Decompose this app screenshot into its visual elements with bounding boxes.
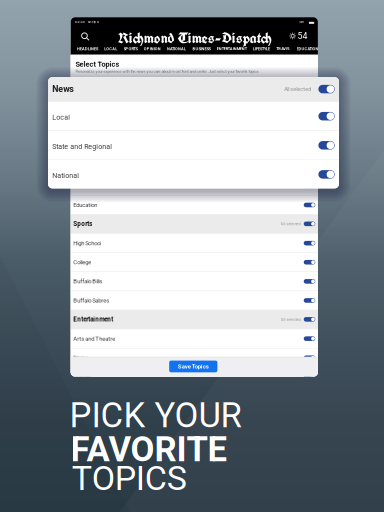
staticText: 10:41 AM Tue Sep 14	[74, 21, 98, 24]
staticText: Dining	[73, 354, 88, 361]
button[interactable]: Dining	[71, 348, 318, 367]
button[interactable]: Arts and Theatre	[71, 329, 318, 348]
staticText: Entertainment	[73, 316, 113, 323]
button[interactable]: Politics	[71, 157, 318, 176]
button[interactable]: High School	[71, 233, 318, 252]
button[interactable]: News	[48, 77, 339, 101]
button[interactable]: National	[48, 160, 339, 189]
staticText: Buffalo Sabres	[73, 297, 109, 304]
button[interactable]: State and Regional	[48, 131, 339, 160]
button[interactable]: Save Topics	[169, 361, 217, 372]
staticText: Local	[52, 113, 70, 122]
staticText: 100%	[299, 20, 304, 23]
staticText: National	[52, 171, 79, 180]
button[interactable]: Nation & World	[71, 176, 318, 195]
staticText: FAVORITE	[71, 429, 228, 470]
button[interactable]: National	[71, 138, 318, 157]
staticText: All selected	[280, 317, 300, 322]
staticText: High School	[73, 240, 101, 247]
staticText: Save Topics	[178, 363, 209, 370]
button[interactable]: Search	[81, 32, 89, 41]
staticText: ENTERTAINMENT	[217, 47, 247, 51]
button[interactable]: Buffalo Bills	[71, 272, 318, 291]
staticText: 54	[298, 31, 308, 41]
staticText: TRAVEL	[276, 47, 290, 51]
staticText: All selected	[280, 222, 300, 226]
staticText: Sports	[73, 220, 92, 227]
button[interactable]: Local	[48, 102, 339, 130]
button[interactable]: Movies	[71, 367, 318, 386]
staticText: News	[73, 86, 88, 94]
staticText: National	[73, 144, 93, 151]
staticText: Richmond Times-Dispatch	[118, 27, 272, 48]
staticText: Arts and Theatre	[73, 335, 115, 342]
staticText: EDUCATION	[297, 47, 319, 51]
button[interactable]: Education	[71, 195, 318, 214]
staticText: News	[52, 84, 74, 94]
button[interactable]: Buffalo Sabres	[71, 291, 318, 310]
button[interactable]: Entertainment	[71, 310, 318, 329]
staticText: SPORTS	[123, 47, 137, 51]
staticText: BUSINESS	[192, 47, 210, 51]
staticText: LIFESTYLE	[253, 47, 270, 51]
staticText: TOPICS	[72, 458, 187, 498]
staticText: State and Regional	[52, 142, 112, 151]
staticText: OPINION	[144, 47, 161, 51]
staticText: All selected	[280, 88, 300, 92]
staticText: Nation & World	[73, 182, 109, 189]
staticText: Select Topics	[75, 60, 119, 68]
button[interactable]: News	[71, 81, 318, 100]
staticText: State and Regional	[73, 125, 118, 132]
staticText: Movies	[73, 373, 91, 380]
staticText: NATIONAL	[167, 47, 186, 51]
staticText: Education	[73, 201, 97, 208]
staticText: College	[73, 259, 91, 266]
staticText: Buffalo Bills	[73, 278, 102, 285]
staticText: PICK YOUR	[70, 395, 242, 436]
button[interactable]: College	[71, 252, 318, 272]
button[interactable]: Local	[71, 100, 318, 119]
staticText: LOCAL	[104, 47, 117, 51]
staticText: All selected	[284, 86, 311, 92]
button[interactable]: Sports	[71, 214, 318, 233]
staticText: Personalize your experience with the new…	[75, 69, 259, 74]
staticText: HEADLINES	[77, 47, 98, 51]
